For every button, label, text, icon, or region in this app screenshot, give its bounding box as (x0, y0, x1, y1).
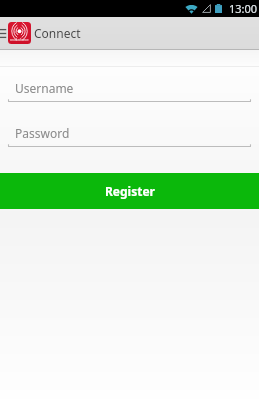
staticText: Password (15, 125, 70, 141)
button[interactable]: Password (8, 125, 251, 147)
button[interactable]: Open navigation menu (0, 17, 8, 50)
button[interactable]: Register (0, 173, 259, 209)
staticText: 13:00 (229, 1, 258, 16)
button[interactable]: Username (8, 80, 251, 102)
staticText: vodafone (10, 37, 29, 43)
staticText: Connect (34, 25, 81, 41)
staticText: Username (15, 80, 74, 96)
staticText: Register (105, 183, 155, 199)
